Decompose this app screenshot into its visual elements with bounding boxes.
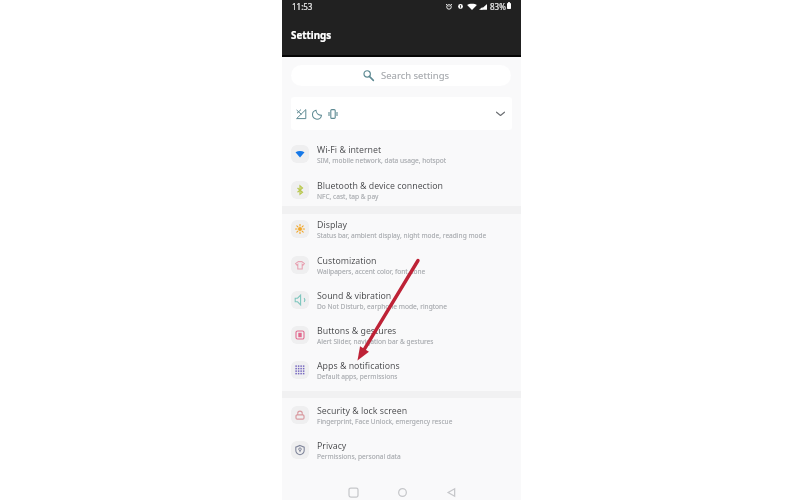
staticText: Default apps, permissions: [317, 372, 398, 381]
staticText: Customization: [317, 255, 377, 267]
staticText: Fingerprint, Face Unlock, emergency resc…: [317, 417, 453, 426]
staticText: Permissions, personal data: [317, 452, 401, 461]
staticText: NFC, cast, tap & pay: [317, 192, 379, 201]
staticText: 11:53: [292, 1, 313, 12]
staticText: Wallpapers, accent color, font, tone: [317, 267, 426, 276]
staticText: Search settings: [381, 69, 450, 82]
button[interactable]: Search settings: [291, 65, 511, 86]
staticText: Wi-Fi & internet: [317, 144, 382, 156]
button[interactable]: Apps & notifications: [282, 352, 521, 388]
button[interactable]: Display: [282, 211, 521, 247]
staticText: Privacy: [317, 440, 347, 452]
button[interactable]: Recents: [343, 482, 363, 500]
button[interactable]: Sound & vibration: [282, 282, 521, 318]
staticText: SIM, mobile network, data usage, hotspot: [317, 156, 447, 165]
button[interactable]: Bluetooth & device connection: [282, 172, 521, 208]
staticText: Bluetooth & device connection: [317, 180, 444, 192]
staticText: Apps & notifications: [317, 360, 400, 372]
staticText: 83%: [490, 1, 506, 12]
button[interactable]: Back: [441, 482, 461, 500]
button[interactable]: Home: [392, 482, 412, 500]
button[interactable]: Customization: [282, 247, 521, 283]
staticText: Do Not Disturb, earphone mode, ringtone: [317, 302, 447, 311]
staticText: Security & lock screen: [317, 405, 408, 417]
staticText: Sound & vibration: [317, 290, 392, 302]
button[interactable]: [291, 97, 512, 130]
button[interactable]: Privacy: [282, 432, 521, 468]
staticText: Alert Slider, navigation bar & gestures: [317, 337, 434, 346]
staticText: Buttons & gestures: [317, 325, 397, 337]
button[interactable]: Buttons & gestures: [282, 317, 521, 353]
button[interactable]: Wi-Fi & internet: [282, 136, 521, 172]
staticText: Status bar, ambient display, night mode,…: [317, 231, 487, 240]
button[interactable]: Security & lock screen: [282, 397, 521, 433]
staticText: Display: [317, 219, 348, 231]
staticText: Settings: [291, 29, 332, 42]
